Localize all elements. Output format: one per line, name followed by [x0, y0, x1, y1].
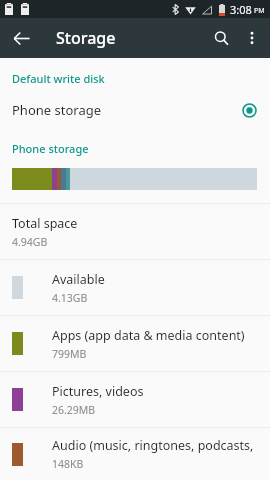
staticText: 4.13GB [52, 291, 88, 305]
button[interactable]: More options [237, 23, 267, 53]
staticText: Phone storage [12, 141, 89, 156]
button[interactable]: Navigate up [5, 22, 37, 54]
staticText: Pictures, videos [52, 383, 144, 400]
staticText: PM [254, 6, 265, 16]
staticText: Default write disk [12, 71, 105, 86]
button[interactable]: Total space [0, 204, 270, 259]
staticText: Apps (app data & media content) [52, 327, 245, 344]
button[interactable]: Audio (music, ringtones, podcasts, et.. [0, 428, 270, 480]
staticText: 148KB [52, 457, 84, 471]
staticText: Total space [12, 215, 78, 232]
button[interactable]: Pictures, videos [0, 372, 270, 427]
staticText: 26.29MB [52, 403, 96, 417]
staticText: 799MB [52, 347, 87, 361]
staticText: Available [52, 271, 105, 288]
button[interactable]: Phone storage [0, 95, 270, 125]
staticText: 3:08 [230, 2, 252, 17]
button[interactable]: Apps (app data & media content) [0, 316, 270, 371]
staticText: 4.94GB [12, 235, 48, 249]
staticText: Phone storage [12, 101, 102, 119]
staticText: Storage [56, 27, 116, 49]
button[interactable]: Available [0, 260, 270, 315]
staticText: Audio (music, ringtones, podcasts, et.. [52, 437, 260, 454]
button[interactable]: Search [205, 22, 237, 54]
